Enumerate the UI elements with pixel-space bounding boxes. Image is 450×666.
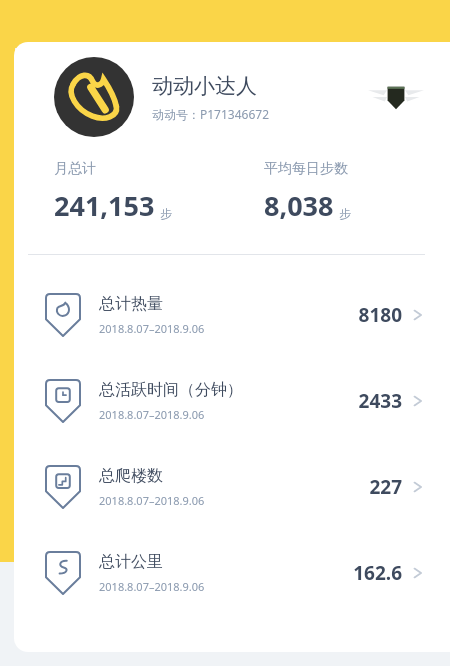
button[interactable]: 总活跃时间（分钟）	[14, 358, 450, 444]
button[interactable]: 总计热量	[14, 272, 450, 358]
staticText: 8,038	[264, 187, 334, 224]
staticText: 总爬楼数	[99, 466, 163, 486]
staticText: 2018.8.07–2018.9.06	[99, 493, 205, 508]
button[interactable]: Badge	[368, 80, 424, 114]
staticText: 动动号：P171346672	[152, 106, 270, 122]
button[interactable]: 总爬楼数	[14, 444, 450, 530]
staticText: 241,153	[54, 187, 155, 224]
staticText: 8180	[358, 302, 402, 328]
staticText: 总计公里	[99, 552, 163, 572]
staticText: 步	[160, 206, 172, 221]
staticText: 2433	[358, 388, 402, 414]
button[interactable]: 动动小达人	[14, 56, 450, 138]
staticText: 总计热量	[99, 294, 163, 314]
staticText: 平均每日步数	[264, 160, 348, 178]
staticText: 步	[339, 206, 351, 221]
staticText: 2018.8.07–2018.9.06	[99, 579, 205, 594]
staticText: 227	[369, 474, 402, 500]
button[interactable]: 总计公里	[14, 530, 450, 616]
staticText: 总活跃时间（分钟）	[99, 380, 243, 400]
staticText: 动动小达人	[152, 73, 257, 99]
staticText: 2018.8.07–2018.9.06	[99, 321, 205, 336]
staticText: 月总计	[54, 160, 96, 178]
staticText: 162.6	[353, 560, 402, 586]
staticText: 2018.8.07–2018.9.06	[99, 407, 205, 422]
